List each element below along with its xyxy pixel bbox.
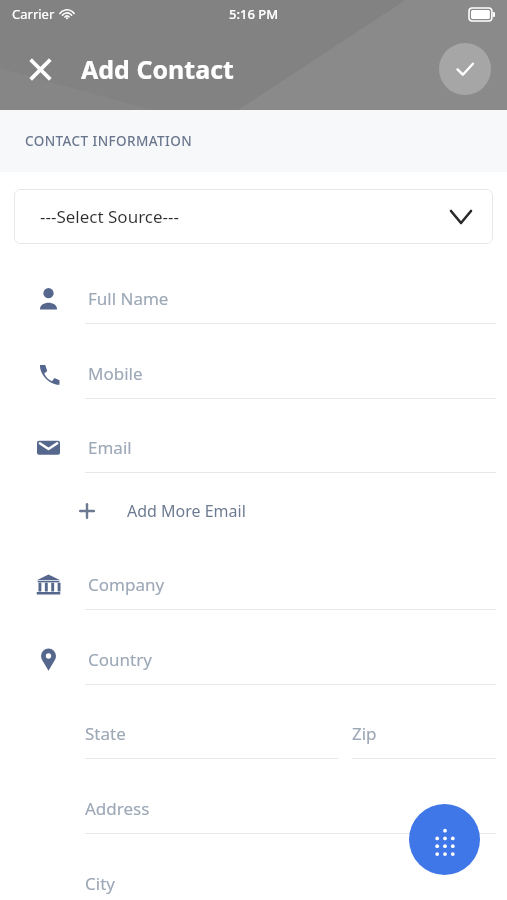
button[interactable]: Address — [85, 782, 496, 834]
button[interactable]: Full Name — [0, 272, 507, 324]
button[interactable]: Save contact — [439, 43, 491, 95]
button[interactable]: City — [85, 857, 496, 900]
staticText: State — [85, 722, 126, 745]
button[interactable]: Company — [0, 558, 507, 610]
button[interactable]: State — [85, 707, 338, 759]
button[interactable]: Zip — [352, 707, 496, 759]
button[interactable]: Mobile — [0, 347, 507, 399]
button[interactable]: ---Select Source--- — [14, 189, 493, 244]
staticText: Address — [85, 797, 150, 820]
staticText: ---Select Source--- — [40, 205, 180, 228]
staticText: City — [85, 872, 115, 895]
staticText: Email — [88, 436, 132, 459]
staticText: Mobile — [88, 362, 143, 385]
staticText: Add Contact — [81, 52, 234, 86]
staticText: Full Name — [88, 287, 169, 310]
staticText: Country — [88, 648, 152, 671]
staticText: Zip — [352, 722, 377, 745]
staticText: Company — [88, 573, 165, 596]
button[interactable]: Close — [22, 51, 58, 87]
staticText: Carrier — [12, 5, 55, 23]
button[interactable]: Country — [0, 633, 507, 685]
staticText: CONTACT INFORMATION — [25, 132, 193, 150]
button[interactable]: More actions — [409, 804, 480, 875]
button[interactable]: Add More Email — [78, 490, 246, 532]
staticText: 5:16 PM — [229, 5, 279, 23]
button[interactable]: Email — [0, 421, 507, 473]
staticText: Add More Email — [127, 500, 246, 522]
